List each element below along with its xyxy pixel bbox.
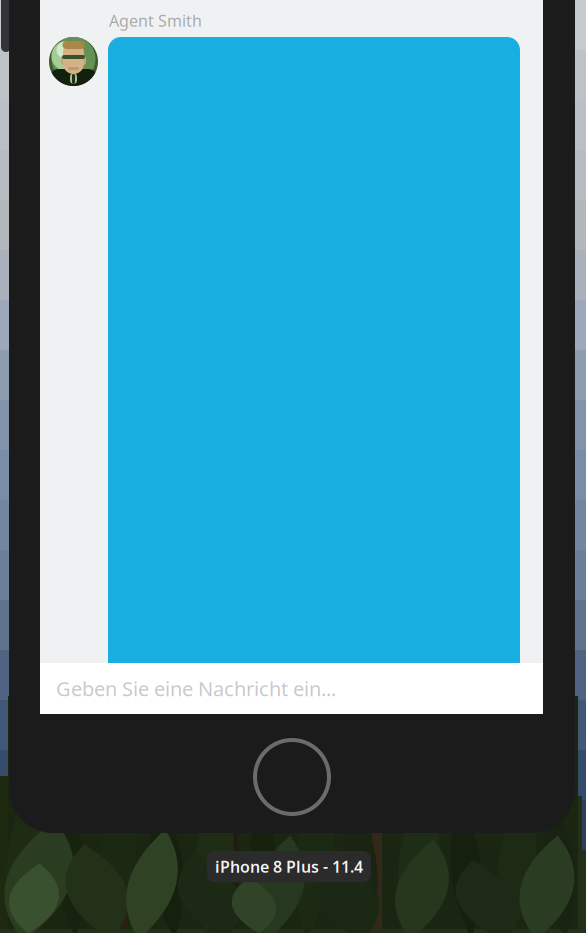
staticText: iPhone 8 Plus - 11.4: [215, 856, 363, 877]
staticText: Agent Smith: [109, 10, 202, 31]
staticText: Geben Sie eine Nachricht ein...: [56, 675, 336, 702]
button[interactable]: Geben Sie eine Nachricht ein...: [40, 663, 543, 714]
